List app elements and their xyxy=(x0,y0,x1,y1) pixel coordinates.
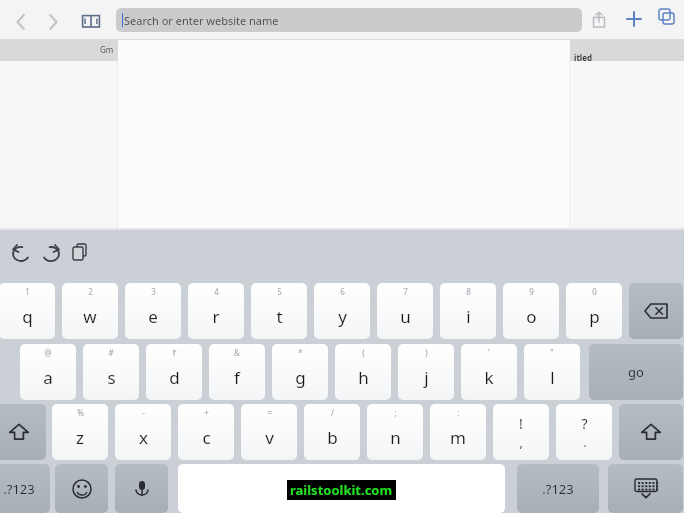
button[interactable]: go xyxy=(589,344,683,400)
button[interactable]: Back xyxy=(4,6,36,38)
button[interactable]: - xyxy=(115,404,171,460)
button[interactable]: 2 xyxy=(62,283,118,339)
button[interactable]: ) xyxy=(398,344,454,400)
staticText: go xyxy=(628,363,644,381)
button[interactable]: 4 xyxy=(188,283,244,339)
button[interactable]: Backspace xyxy=(629,283,683,339)
button[interactable]: % xyxy=(52,404,108,460)
staticText: Search or enter website name xyxy=(124,13,279,28)
staticText: b xyxy=(327,426,338,449)
staticText: n xyxy=(390,426,401,449)
staticText: q xyxy=(22,305,33,328)
staticText: r xyxy=(212,305,220,328)
staticText: g xyxy=(295,366,306,389)
staticText: f xyxy=(234,366,240,389)
staticText: m xyxy=(450,426,466,449)
staticText: c xyxy=(202,426,211,449)
staticText: j xyxy=(424,366,429,389)
staticText: k xyxy=(484,366,494,389)
staticText: 0 xyxy=(592,286,597,297)
staticText: i xyxy=(466,305,471,328)
staticText: w xyxy=(83,305,97,328)
button[interactable]: Show tabs xyxy=(656,7,680,31)
staticText: : xyxy=(457,407,460,418)
staticText: l xyxy=(550,366,555,389)
button[interactable]: " xyxy=(524,344,580,400)
button[interactable]: Space xyxy=(178,464,505,513)
button[interactable]: & xyxy=(209,344,265,400)
button[interactable]: ' xyxy=(461,344,517,400)
button[interactable]: Undo xyxy=(6,239,36,269)
button[interactable]: ? xyxy=(556,404,612,460)
staticText: 9 xyxy=(529,286,534,297)
staticText: x xyxy=(139,426,148,449)
button[interactable]: / xyxy=(304,404,360,460)
staticText: * xyxy=(298,347,303,358)
staticText: d xyxy=(169,366,180,389)
button[interactable]: @ xyxy=(20,344,76,400)
button[interactable]: # xyxy=(83,344,139,400)
button[interactable]: Emoji xyxy=(55,464,108,513)
button[interactable]: 5 xyxy=(251,283,307,339)
button[interactable]: Search or enter website name xyxy=(116,8,582,32)
button[interactable]: 0 xyxy=(566,283,622,339)
staticText: 4 xyxy=(214,286,219,297)
button[interactable]: Hide keyboard xyxy=(608,464,683,513)
staticText: z xyxy=(76,426,84,449)
button[interactable]: ₹ xyxy=(146,344,202,400)
staticText: h xyxy=(358,366,369,389)
button[interactable]: Paste xyxy=(66,239,96,269)
staticText: ) xyxy=(425,347,428,358)
button[interactable]: 8 xyxy=(440,283,496,339)
button[interactable]: ! xyxy=(493,404,549,460)
staticText: t xyxy=(276,305,283,328)
staticText: .?123 xyxy=(3,480,35,498)
staticText: @ xyxy=(44,347,52,358)
staticText: a xyxy=(43,366,53,389)
staticText: .?123 xyxy=(542,480,574,498)
staticText: e xyxy=(148,305,158,328)
staticText: ; xyxy=(394,407,397,418)
staticText: s xyxy=(107,366,116,389)
button[interactable]: ( xyxy=(335,344,391,400)
button[interactable]: 9 xyxy=(503,283,559,339)
button[interactable]: Shift xyxy=(619,404,683,460)
staticText: . xyxy=(583,434,587,450)
button[interactable]: 6 xyxy=(314,283,370,339)
staticText: ! xyxy=(519,414,523,433)
staticText: 78% xyxy=(633,2,650,13)
button[interactable]: Shift xyxy=(0,404,46,460)
button[interactable]: New tab xyxy=(622,7,646,31)
button[interactable]: : xyxy=(430,404,486,460)
staticText: " xyxy=(550,347,554,358)
staticText: 8 xyxy=(466,286,471,297)
staticText: - xyxy=(142,407,145,418)
button[interactable]: 1 xyxy=(0,283,55,339)
button[interactable]: .?123 xyxy=(0,464,50,513)
staticText: railstoolkit.com xyxy=(290,481,393,499)
button[interactable]: = xyxy=(241,404,297,460)
staticText: , xyxy=(519,434,523,450)
button[interactable]: 3 xyxy=(125,283,181,339)
button[interactable]: ; xyxy=(367,404,423,460)
button[interactable]: Share xyxy=(586,7,612,33)
button[interactable]: Gm xyxy=(100,44,114,55)
staticText: ₹ xyxy=(172,347,177,358)
button[interactable]: * xyxy=(272,344,328,400)
button[interactable]: Forward xyxy=(38,6,70,38)
staticText: & xyxy=(234,347,240,358)
staticText: 6 xyxy=(340,286,345,297)
staticText: 5 xyxy=(277,286,282,297)
staticText: + xyxy=(204,407,209,418)
staticText: p xyxy=(589,305,600,328)
staticText: % xyxy=(77,407,84,418)
button[interactable]: Redo xyxy=(36,239,66,269)
staticText: 1 xyxy=(25,286,30,297)
button[interactable]: + xyxy=(178,404,234,460)
button[interactable]: itled xyxy=(574,52,593,63)
button[interactable]: Bookmarks xyxy=(76,6,106,36)
button[interactable]: 7 xyxy=(377,283,433,339)
button[interactable]: .?123 xyxy=(517,464,599,513)
button[interactable]: Dictation xyxy=(115,464,168,513)
staticText: 7 xyxy=(403,286,408,297)
